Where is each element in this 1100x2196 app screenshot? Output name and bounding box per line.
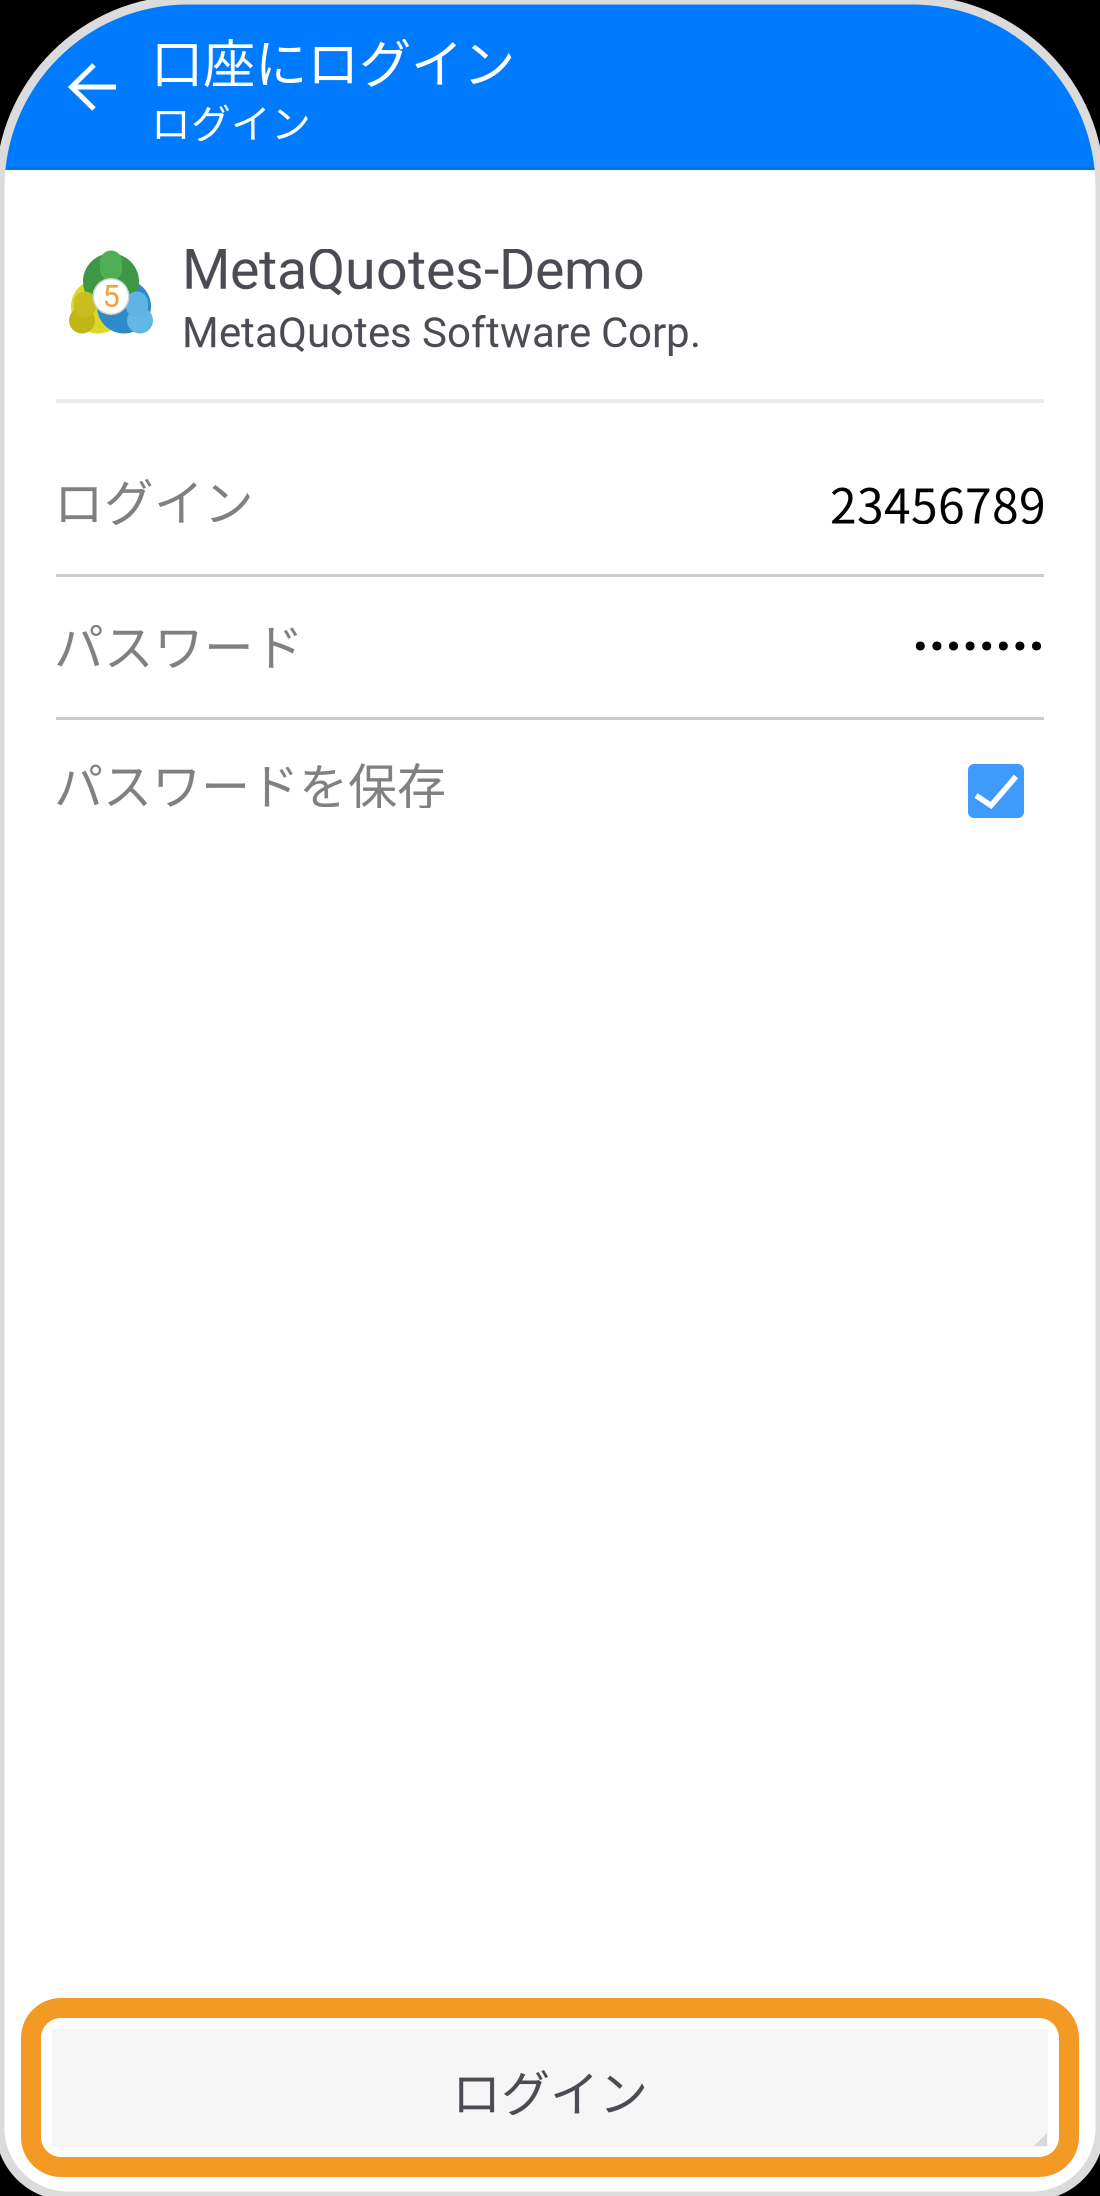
staticText: 口座にログイン: [151, 22, 515, 98]
staticText: 5: [102, 278, 119, 314]
staticText: ログイン: [54, 464, 254, 535]
staticText: MetaQuotes Software Corp.: [182, 308, 701, 358]
button[interactable]: ログイン: [0, 2008, 1100, 2167]
button[interactable]: パスワードを保存: [0, 720, 1100, 868]
button[interactable]: Back: [0, 0, 155, 170]
staticText: パスワード: [54, 608, 304, 680]
staticText: パスワードを保存: [54, 747, 446, 818]
staticText: 23456789: [830, 468, 1046, 537]
staticText: ログイン: [452, 2054, 648, 2125]
staticText: ログイン: [151, 92, 311, 150]
staticText: MetaQuotes-Demo: [182, 237, 645, 302]
